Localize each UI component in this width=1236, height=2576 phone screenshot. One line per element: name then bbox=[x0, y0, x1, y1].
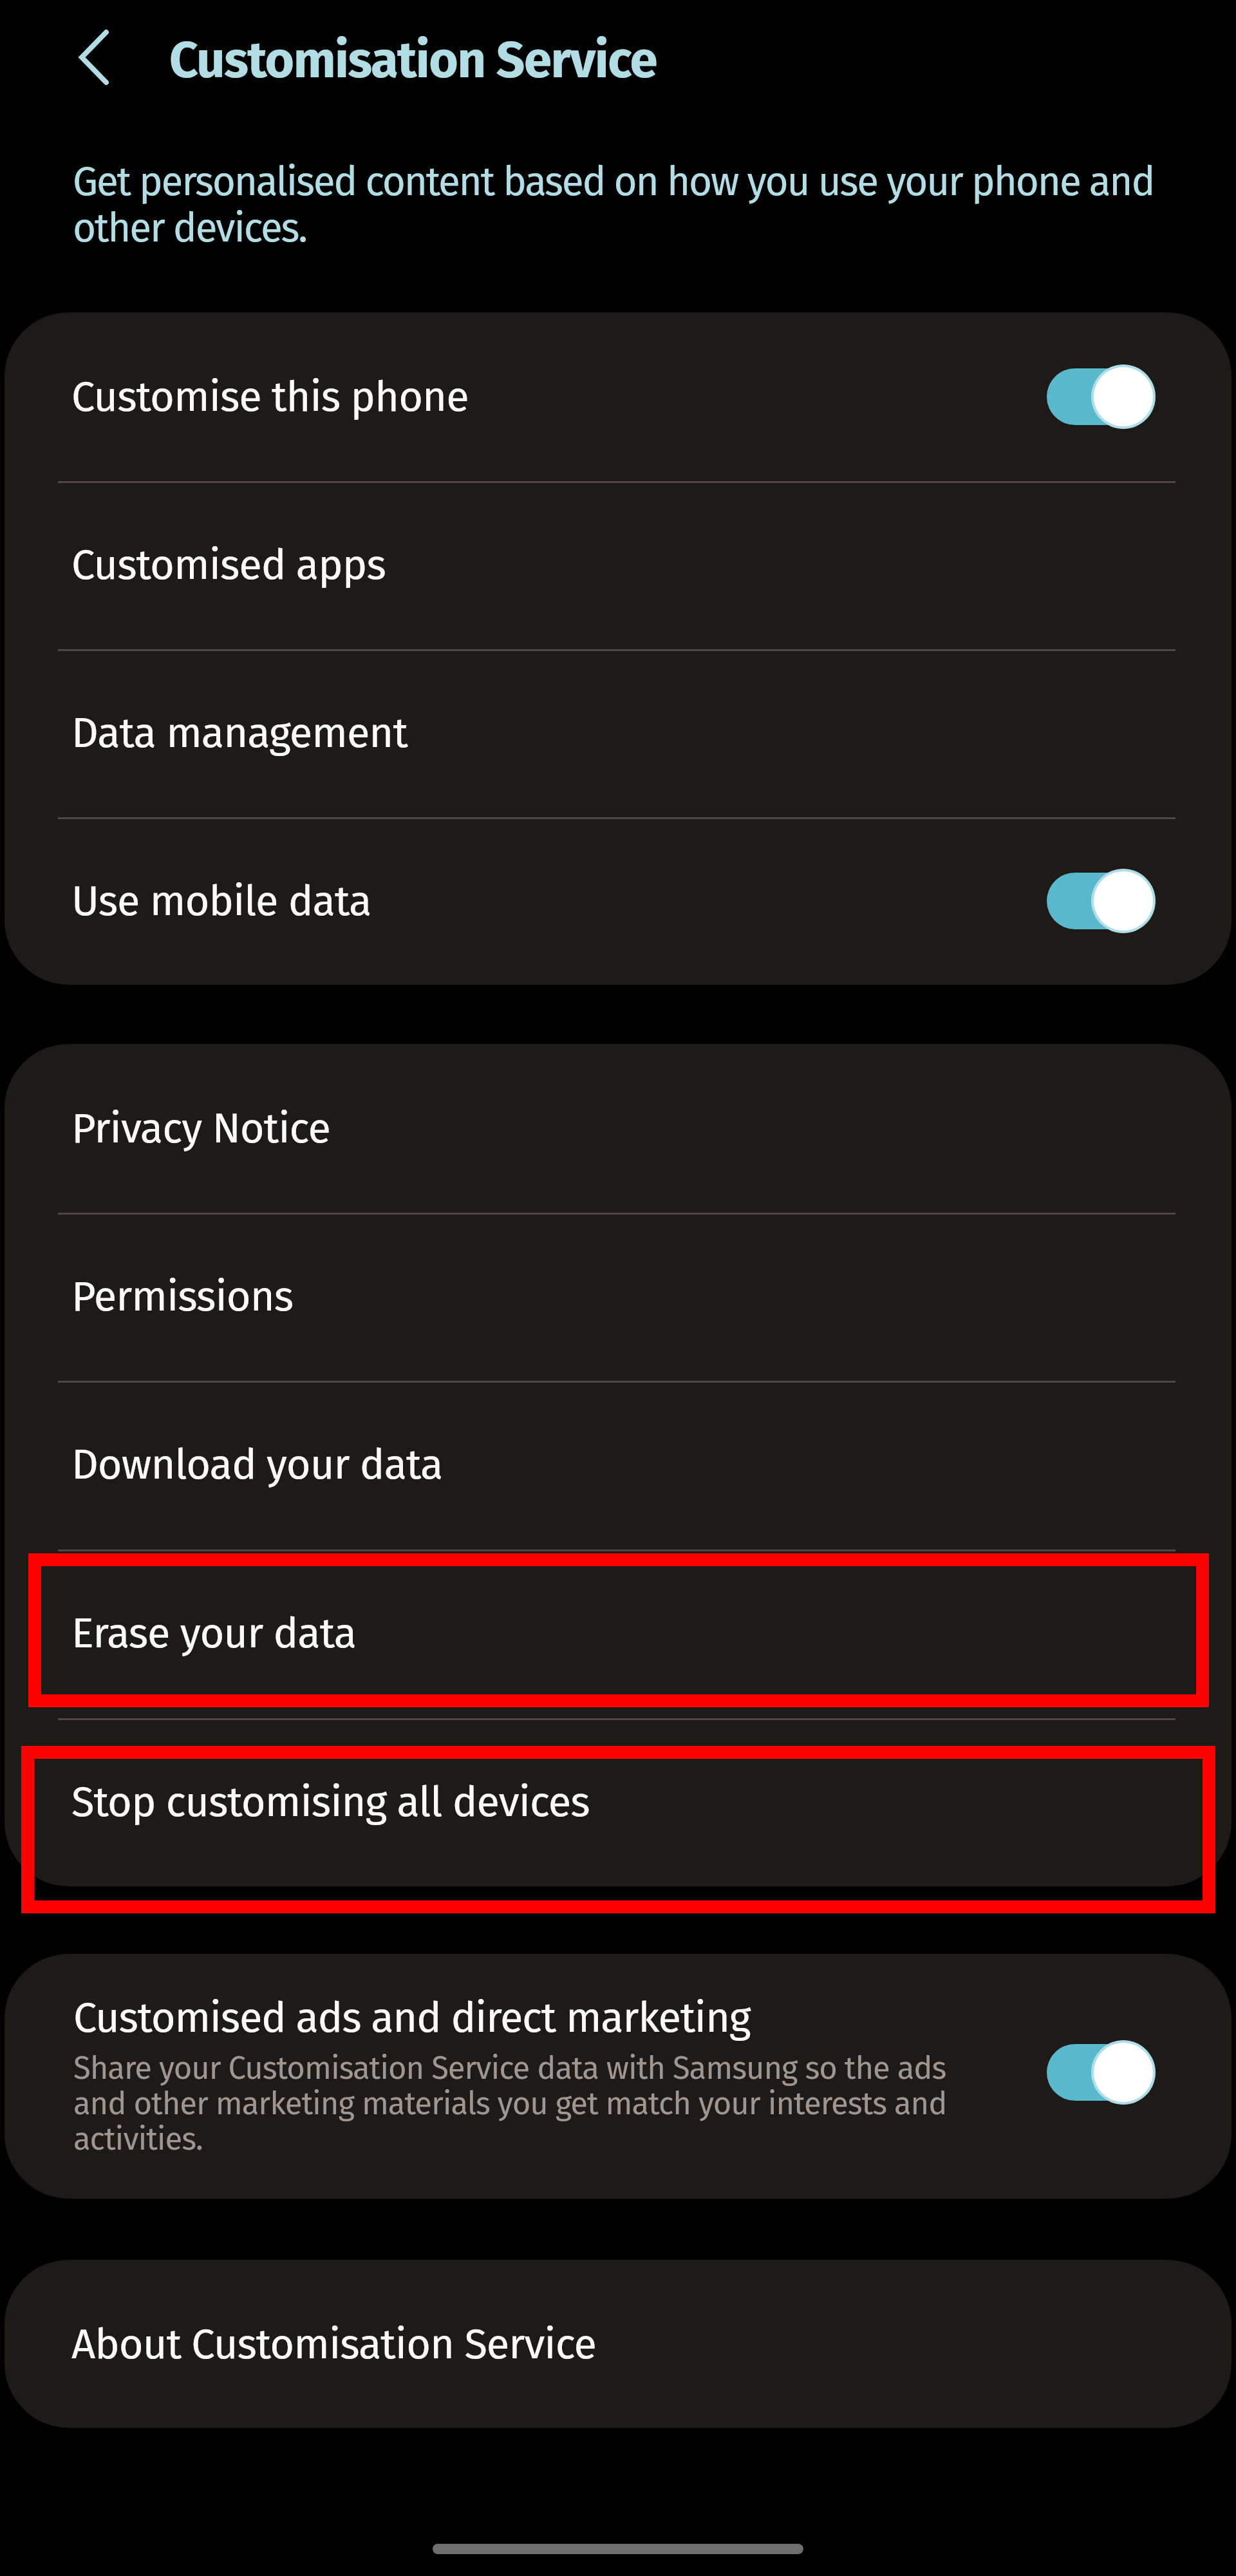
button[interactable]: Erase your data bbox=[5, 1549, 1231, 1718]
button[interactable]: About Customisation Service bbox=[5, 2260, 1231, 2428]
staticText: Erase your data bbox=[71, 1608, 357, 1658]
staticText: Data management bbox=[71, 708, 407, 758]
button[interactable]: Use mobile data bbox=[5, 817, 1231, 985]
staticText: Privacy Notice bbox=[71, 1103, 330, 1153]
staticText: Share your Customisation Service data wi… bbox=[73, 2049, 975, 2158]
button[interactable]: Stop customising all devices bbox=[5, 1718, 1231, 1886]
button[interactable]: Toggle Customise this phone bbox=[1047, 363, 1157, 430]
button[interactable]: Download your data bbox=[5, 1380, 1231, 1549]
staticText: Use mobile data bbox=[71, 876, 371, 926]
staticText: Stop customising all devices bbox=[71, 1777, 590, 1827]
staticText: About Customisation Service bbox=[71, 2319, 596, 2369]
staticText: Customisation Service bbox=[169, 30, 657, 91]
staticText: Permissions bbox=[71, 1271, 294, 1321]
button[interactable]: Toggle customised ads and direct marketi… bbox=[1047, 2039, 1157, 2106]
staticText: Customise this phone bbox=[71, 372, 469, 422]
button[interactable]: Customise this phone bbox=[5, 312, 1231, 480]
button[interactable]: Back bbox=[52, 15, 136, 99]
button[interactable]: Permissions bbox=[5, 1212, 1231, 1380]
button[interactable]: Data management bbox=[5, 649, 1231, 817]
staticText: Download your data bbox=[71, 1439, 443, 1490]
staticText: Customised ads and direct marketing bbox=[73, 1993, 751, 2043]
staticText: Customised apps bbox=[71, 540, 386, 590]
button[interactable]: Privacy Notice bbox=[5, 1044, 1231, 1212]
button[interactable]: Customised ads and direct marketing bbox=[5, 1954, 1231, 2199]
button[interactable]: Customised apps bbox=[5, 480, 1231, 649]
button[interactable]: Toggle Use mobile data bbox=[1047, 867, 1157, 934]
staticText: Get personalised content based on how yo… bbox=[73, 158, 1197, 252]
